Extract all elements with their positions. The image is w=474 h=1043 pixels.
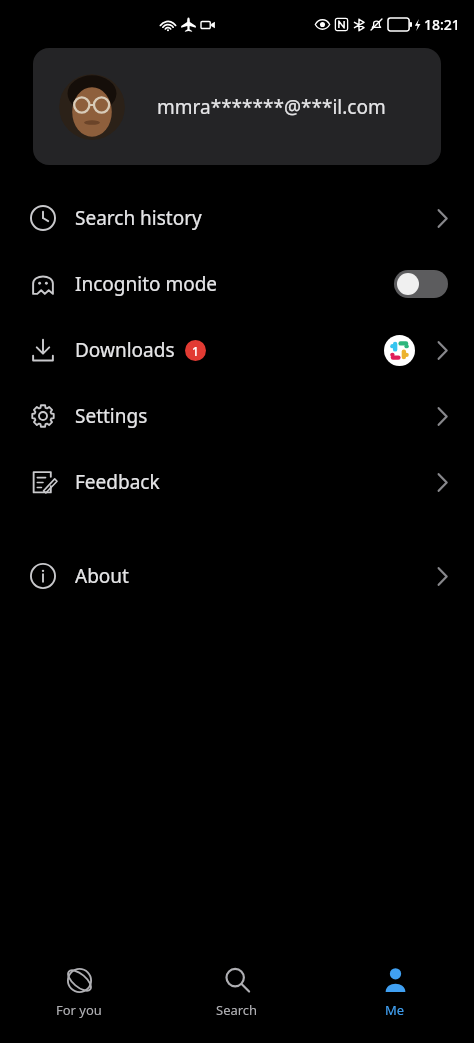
button[interactable]: Settings: [0, 383, 474, 449]
staticText: Settings: [75, 403, 148, 429]
button[interactable]: Search: [158, 955, 316, 1029]
staticText: Feedback: [75, 469, 160, 495]
staticText: About: [75, 563, 129, 589]
button[interactable]: Me: [316, 955, 474, 1029]
button[interactable]: Incognito mode toggle: [394, 270, 448, 298]
button[interactable]: mmra*******@***il.com: [33, 48, 441, 165]
staticText: Downloads: [75, 337, 175, 363]
staticText: 18:21: [424, 15, 460, 34]
staticText: For you: [56, 1001, 102, 1019]
staticText: Incognito mode: [75, 271, 218, 297]
button[interactable]: About: [0, 543, 474, 609]
button[interactable]: Downloads: [0, 317, 474, 383]
staticText: Search: [216, 1001, 258, 1019]
staticText: mmra*******@***il.com: [157, 94, 386, 120]
staticText: Search history: [75, 205, 202, 231]
staticText: 1: [192, 343, 199, 359]
button[interactable]: Feedback: [0, 449, 474, 515]
button[interactable]: Incognito mode: [0, 251, 474, 317]
button[interactable]: Search history: [0, 185, 474, 251]
button[interactable]: For you: [0, 955, 158, 1029]
staticText: Me: [385, 1001, 405, 1019]
